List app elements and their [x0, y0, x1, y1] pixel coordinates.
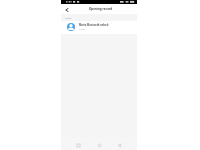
staticText: Today [65, 16, 72, 19]
button[interactable]: Back [62, 5, 71, 14]
staticText: Opening record [89, 7, 113, 11]
button[interactable]: Back [115, 141, 124, 150]
button[interactable]: Recents [74, 141, 83, 150]
button[interactable]: Home [95, 141, 104, 150]
staticText: Mario Bluetooth unlock [79, 23, 109, 26]
staticText: 14:37 [79, 28, 85, 31]
button[interactable]: Mario Bluetooth unlock [61, 21, 137, 34]
